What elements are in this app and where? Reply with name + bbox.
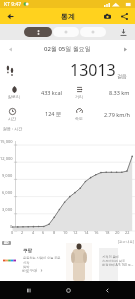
staticText: 한정판매 A/S 160 포... [102,263,134,267]
staticText: 임박 [23,265,30,269]
staticText: 433 kcal [41,89,62,96]
staticText: KT 9:47 [4,1,22,8]
staticText: 거리 [75,94,83,99]
staticText: 18 [105,230,110,235]
staticText: 시간 [8,116,16,121]
staticText: 16 [94,230,99,235]
button[interactable]: 시간 [0,103,67,125]
button[interactable]: Download [115,24,131,40]
button[interactable]: AD [0,238,64,281]
staticText: 기적의 몸매 [102,255,119,259]
staticText: 통계 [61,12,75,21]
staticText: 20 [115,230,120,235]
staticText: 9,000 [2,173,13,178]
staticText: 쿠팡 [23,248,32,254]
staticText: 6,000 [2,190,13,195]
staticText: 2.79 km/h [104,111,130,118]
button[interactable]: 칼로리 [0,82,67,103]
staticText: 8.33 km [109,89,130,96]
staticText: AD [4,241,9,245]
staticText: 124 분 [45,110,62,118]
staticText: 2 [21,230,24,235]
staticText: 02월 05일 월요일 [44,45,91,53]
staticText: 0 [11,230,14,235]
staticText: 8 [53,230,56,235]
staticText: 0 [10,224,13,229]
button[interactable]: Distance tab [53,27,79,37]
staticText: [광고·내용] [118,240,134,244]
staticText: 스즈마인과 남주 [102,259,126,263]
button[interactable]: Next day [115,40,135,58]
button[interactable]: Back [0,8,20,24]
staticText: 3,000 [2,207,13,212]
button[interactable]: Home [56,281,80,299]
staticText: 걸음 [117,73,127,79]
button[interactable]: Calories tab [80,27,106,37]
staticText: 12 [73,230,78,235]
staticText: 속도 [75,116,83,121]
staticText: 13013 [70,59,116,81]
staticText: 운동하는 사람이 오늘 주문 시작 [23,256,64,265]
staticText: 12,000 [0,156,13,161]
button[interactable]: 바로구매 [22,268,43,273]
staticText: 10 [63,230,68,235]
button[interactable]: 거리 [67,82,135,103]
button[interactable]: Previous day [0,40,20,58]
staticText: 15,000 [0,139,13,144]
staticText: 칼로리 [8,94,20,99]
staticText: 14 [84,230,89,235]
button[interactable]: 속도 [67,103,135,125]
button[interactable]: Camera [99,8,115,24]
staticText: 6 [42,230,45,235]
staticText: 22 [125,230,130,235]
staticText: 바로구매 [22,268,38,273]
button[interactable]: Steps tab [24,27,52,37]
button[interactable]: Recent apps [16,281,40,299]
button[interactable]: Back [95,281,119,299]
button[interactable]: Share [116,8,132,24]
staticText: 4 [32,230,35,235]
staticText: 걸음 : 시간 [3,126,23,131]
